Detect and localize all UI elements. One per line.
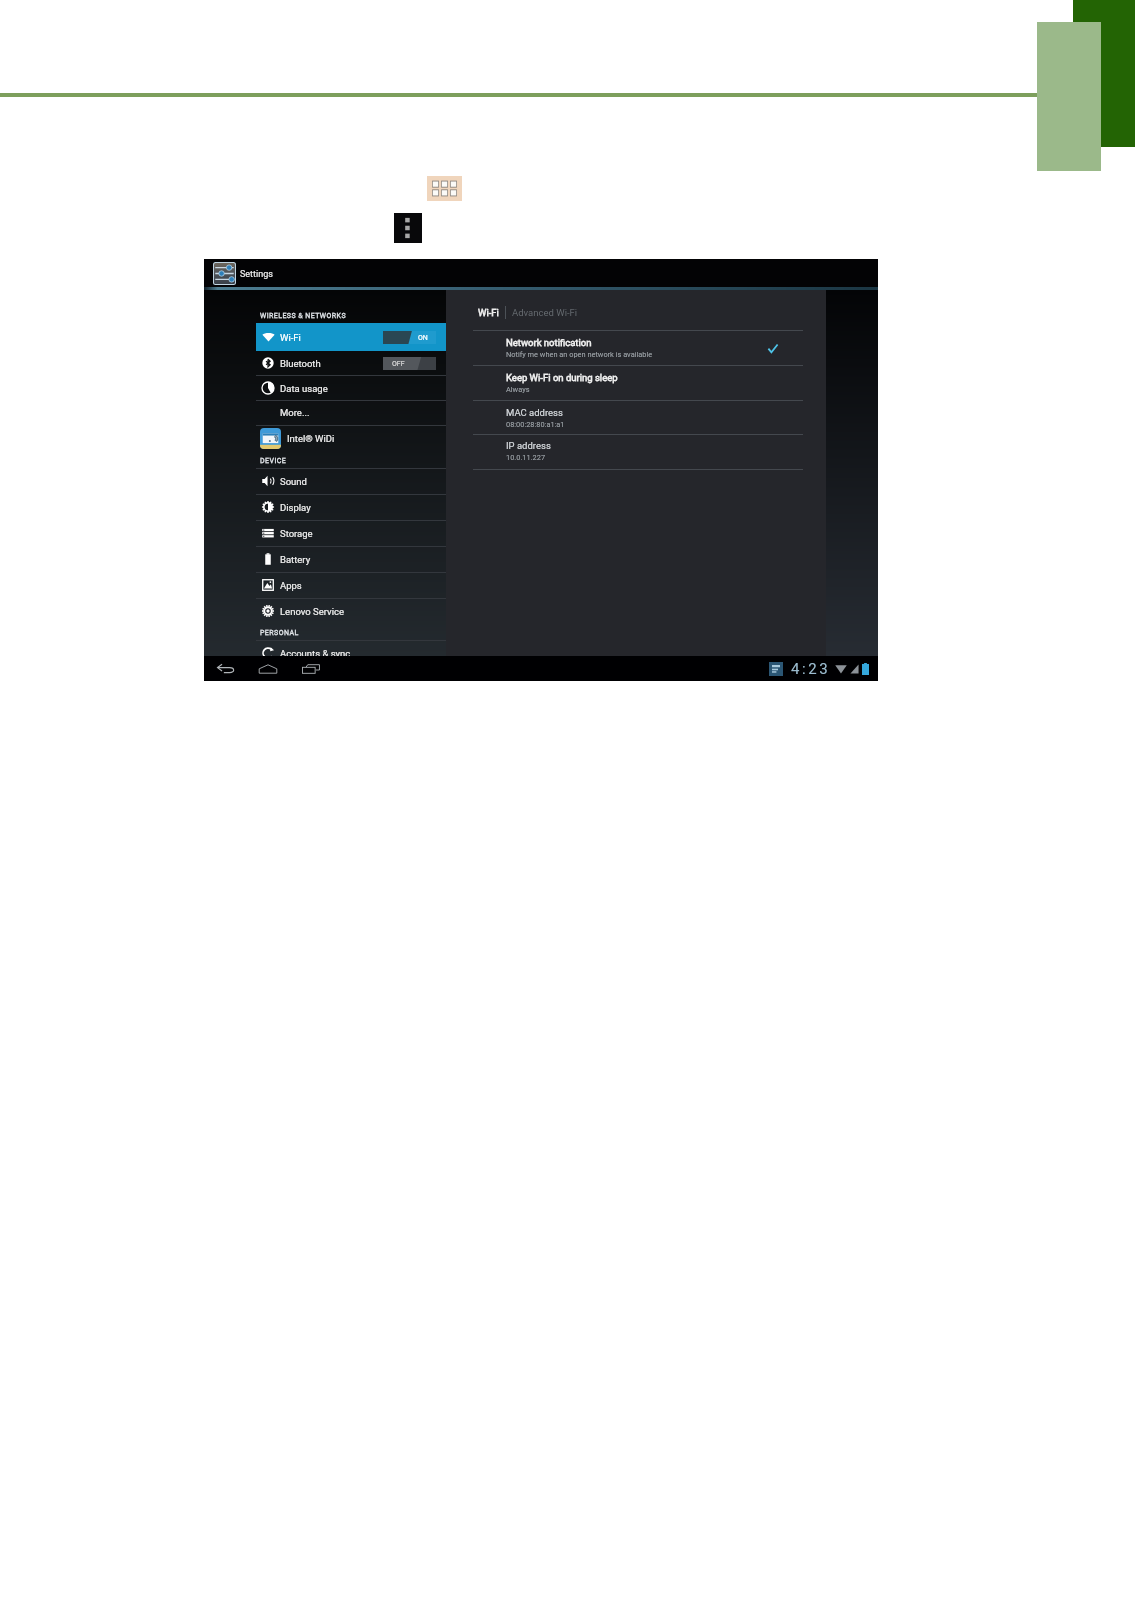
button[interactable]: Display [256, 494, 446, 520]
button[interactable]: Keep Wi-Fi on during sleep [506, 365, 780, 400]
button[interactable]: Wi-Fi [478, 307, 499, 318]
button[interactable]: MAC address [506, 400, 780, 435]
staticText: OFF [392, 360, 405, 368]
staticText: Data usage [280, 383, 328, 394]
button[interactable]: More... [256, 400, 446, 425]
staticText: 10.0.11.227 [506, 453, 546, 462]
staticText: Display [280, 502, 311, 513]
staticText: WIRELESS & NETWORKS [260, 312, 347, 320]
button[interactable]: Settings [204, 259, 324, 287]
staticText: Notify me when an open network is availa… [506, 350, 653, 359]
staticText: Keep Wi-Fi on during sleep [506, 372, 618, 383]
staticText: Advanced Wi-Fi [512, 307, 578, 318]
button[interactable]: Recent apps [302, 664, 320, 674]
staticText: Bluetooth [280, 358, 321, 369]
staticText: Wi-Fi [478, 307, 499, 318]
staticText: Battery [280, 554, 311, 565]
button[interactable]: Advanced Wi-Fi [512, 307, 578, 318]
button[interactable]: Home [258, 664, 278, 674]
staticText: IP address [506, 440, 551, 451]
staticText: MAC address [506, 407, 563, 418]
button[interactable]: Status bar, 4:23 [769, 656, 878, 681]
button[interactable]: Network notification [506, 330, 780, 365]
staticText: Lenovo Service [280, 606, 344, 617]
staticText: Accounts & sync [280, 648, 351, 656]
staticText: Intel® WiDi [287, 433, 335, 444]
button[interactable]: All apps [427, 176, 462, 201]
button[interactable]: Bluetooth [256, 351, 446, 375]
staticText: PERSONAL [260, 629, 299, 637]
button[interactable]: Accounts & sync [256, 640, 446, 656]
button[interactable]: Storage [256, 520, 446, 546]
button[interactable]: Battery [256, 546, 446, 572]
staticText: Apps [280, 580, 302, 591]
button[interactable]: Data usage [256, 375, 446, 401]
staticText: Wi-Fi [280, 332, 301, 343]
staticText: Settings [240, 269, 273, 280]
button[interactable]: Intel® WiDi [256, 425, 446, 452]
staticText: Storage [280, 528, 313, 539]
button[interactable]: Apps [256, 572, 446, 598]
button[interactable]: More options [394, 213, 422, 243]
staticText: Network notification [506, 337, 592, 348]
button[interactable]: Wi-Fi [256, 323, 446, 351]
staticText: Sound [280, 476, 307, 487]
button[interactable]: Sound [256, 468, 446, 494]
staticText: 4:23 [791, 660, 831, 678]
button[interactable]: IP address [506, 434, 780, 468]
staticText: Always [506, 385, 530, 394]
button[interactable]: Lenovo Service [256, 598, 446, 624]
staticText: 08:00:28:80:a1:a1 [506, 420, 565, 429]
button[interactable]: Back [217, 664, 235, 673]
button[interactable]: Network notification [766, 341, 780, 355]
staticText: More... [280, 407, 310, 418]
staticText: ON [418, 334, 428, 342]
staticText: DEVICE [260, 457, 287, 465]
